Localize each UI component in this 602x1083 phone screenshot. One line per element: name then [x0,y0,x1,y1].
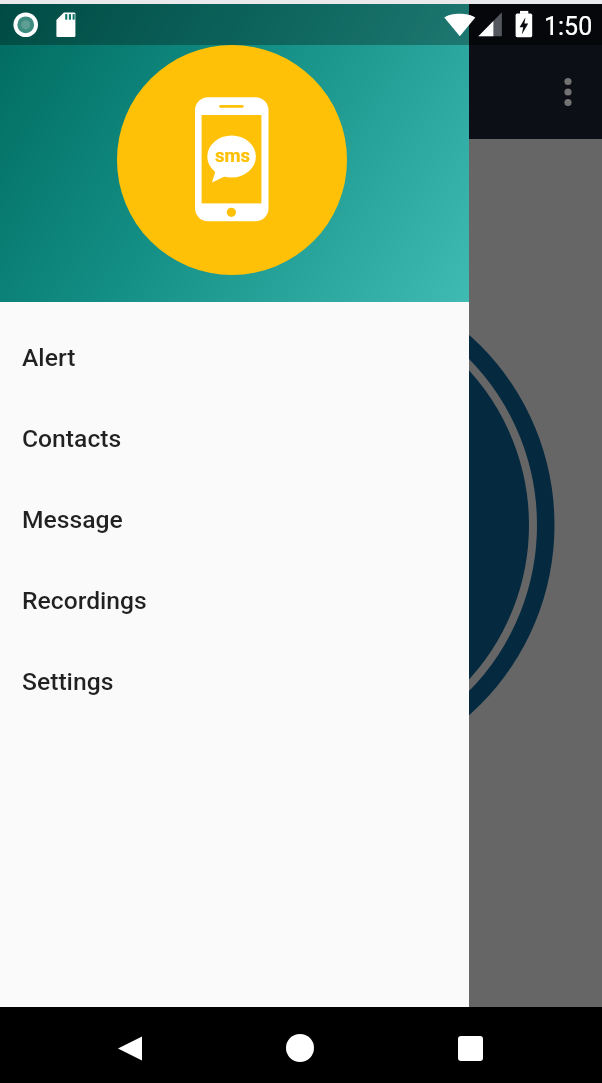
staticText: 1:50 [544,12,593,41]
staticText: Settings [22,667,114,696]
button[interactable]: Home [276,1024,324,1072]
button[interactable]: Back [106,1024,154,1072]
button[interactable]: More options [544,68,592,116]
staticText: Message [22,505,123,534]
staticText: Recordings [22,586,147,615]
button[interactable]: Message [0,479,469,560]
staticText: Alert [22,343,76,372]
staticText: Contacts [22,424,122,453]
staticText: sms [215,145,251,167]
button[interactable]: Settings [0,641,469,722]
button[interactable]: Contacts [0,398,469,479]
button[interactable]: Alert [0,317,469,398]
button[interactable]: Recordings [0,560,469,641]
button[interactable]: Recent apps [446,1024,494,1072]
